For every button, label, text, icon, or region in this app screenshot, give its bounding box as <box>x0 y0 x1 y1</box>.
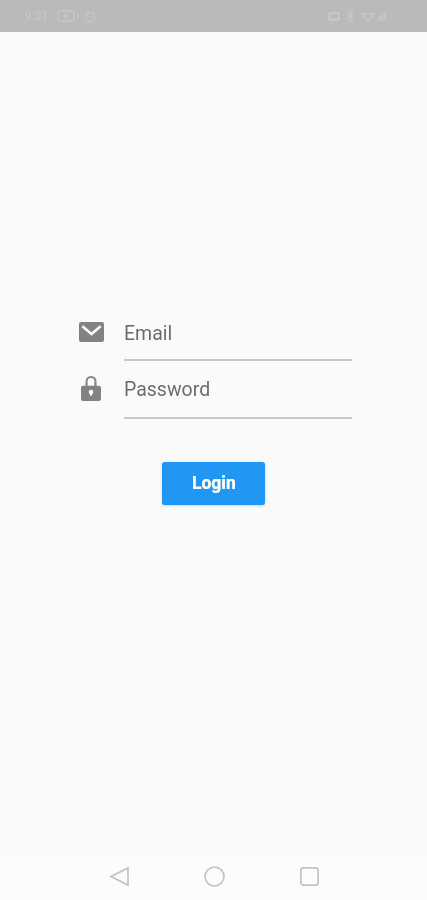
staticText: Email <box>124 322 173 345</box>
staticText: 9:21 <box>25 9 49 23</box>
staticText: Password <box>124 378 211 401</box>
staticText: Login <box>192 473 236 494</box>
button[interactable]: Recent apps <box>283 854 335 898</box>
button[interactable]: Home <box>188 854 240 898</box>
button[interactable]: Login <box>162 462 265 505</box>
button[interactable]: Back <box>93 854 145 898</box>
